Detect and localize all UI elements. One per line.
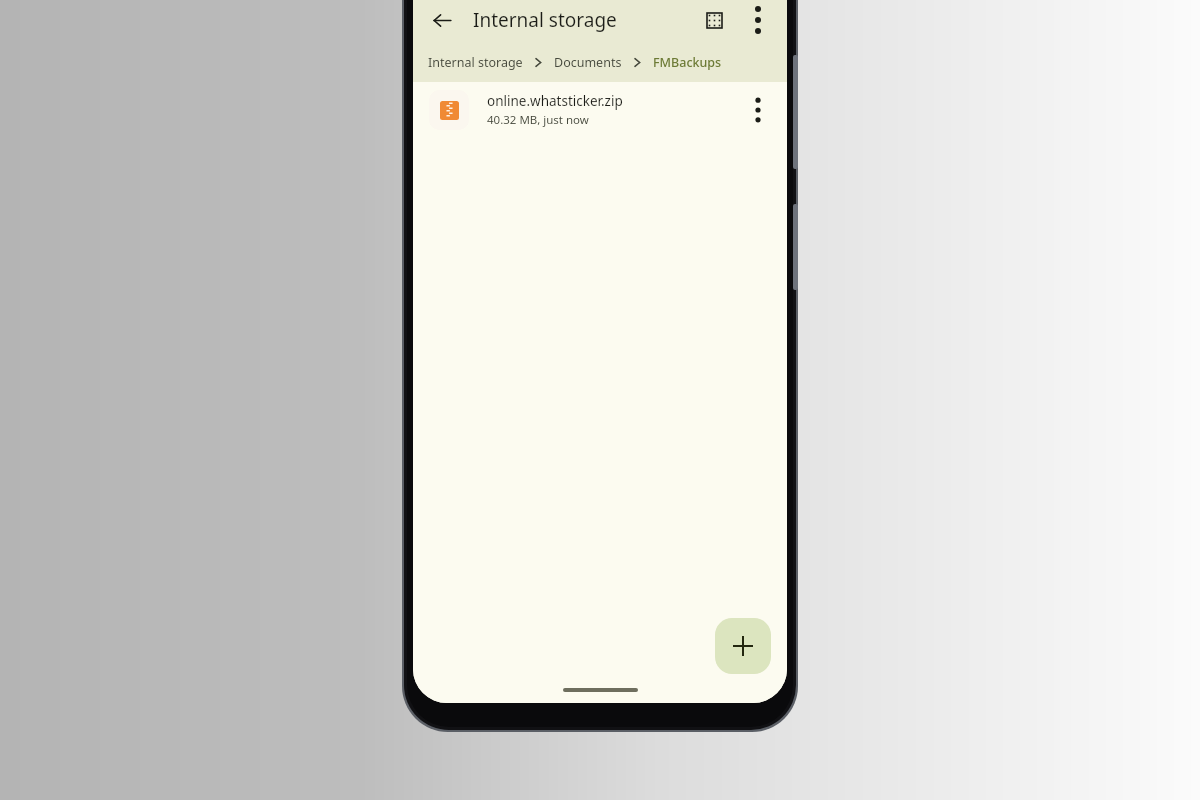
button[interactable]: Back xyxy=(423,1,461,39)
button[interactable]: More options xyxy=(739,1,777,39)
button[interactable]: File options xyxy=(739,91,777,129)
staticText: online.whatsticker.zip xyxy=(487,92,623,110)
staticText: 40.32 MB, just now xyxy=(487,112,589,128)
button[interactable]: Add xyxy=(715,618,771,674)
button[interactable]: online.whatsticker.zip xyxy=(413,82,787,138)
button[interactable]: FMBackups xyxy=(652,52,723,73)
staticText: Internal storage xyxy=(473,7,617,33)
staticText: FMBackups xyxy=(653,54,722,71)
button[interactable]: Documents xyxy=(553,52,623,73)
button[interactable]: Grid view xyxy=(695,1,733,39)
button[interactable]: Internal storage xyxy=(427,52,524,73)
staticText: Internal storage xyxy=(428,54,523,71)
staticText: Documents xyxy=(554,54,622,71)
